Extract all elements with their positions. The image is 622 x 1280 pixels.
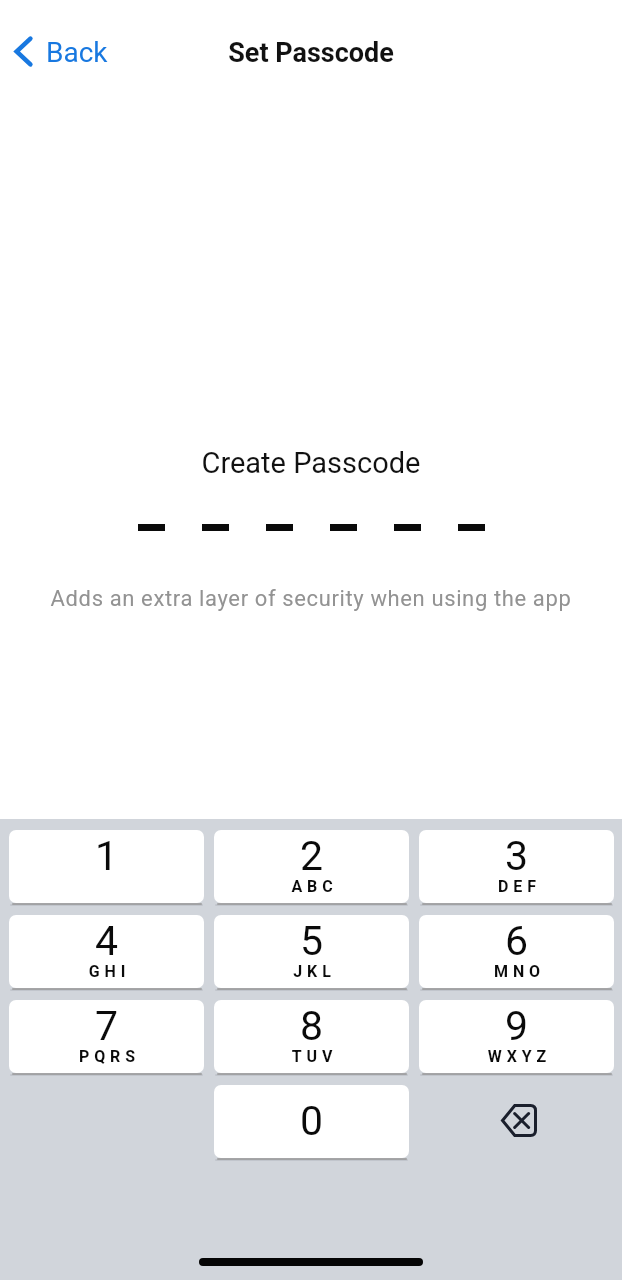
staticText: DEF <box>422 877 614 896</box>
staticText: MNO <box>422 962 614 981</box>
staticText: 4 <box>9 917 204 965</box>
staticText: 6 <box>419 917 614 965</box>
button[interactable]: 6 <box>419 915 614 988</box>
button[interactable]: 7 <box>9 1000 204 1073</box>
staticText: Set Passcode <box>0 37 622 69</box>
button[interactable]: 3 <box>419 830 614 903</box>
staticText: JKL <box>217 962 409 981</box>
staticText: WXYZ <box>422 1047 614 1066</box>
button[interactable]: 9 <box>419 1000 614 1073</box>
staticText: 7 <box>9 1002 204 1050</box>
button[interactable]: 2 <box>214 830 409 903</box>
staticText: TUV <box>217 1047 409 1066</box>
staticText: PQRS <box>12 1047 204 1066</box>
button[interactable]: 5 <box>214 915 409 988</box>
button[interactable]: 8 <box>214 1000 409 1073</box>
staticText: 5 <box>214 917 409 965</box>
staticText: 1 <box>9 832 204 880</box>
button[interactable]: 4 <box>9 915 204 988</box>
button[interactable]: 0 <box>214 1085 409 1158</box>
staticText: 0 <box>214 1097 409 1145</box>
button[interactable]: Delete <box>409 1085 614 1158</box>
staticText: 2 <box>214 832 409 880</box>
staticText: ABC <box>217 877 409 896</box>
staticText: 9 <box>419 1002 614 1050</box>
button[interactable]: 1 <box>9 830 204 903</box>
staticText: Adds an extra layer of security when usi… <box>0 586 622 612</box>
staticText: GHI <box>12 962 204 981</box>
staticText: 8 <box>214 1002 409 1050</box>
staticText: 3 <box>419 832 614 880</box>
staticText: Back <box>46 36 108 69</box>
button[interactable]: Back <box>10 31 112 72</box>
staticText: Create Passcode <box>0 446 622 480</box>
